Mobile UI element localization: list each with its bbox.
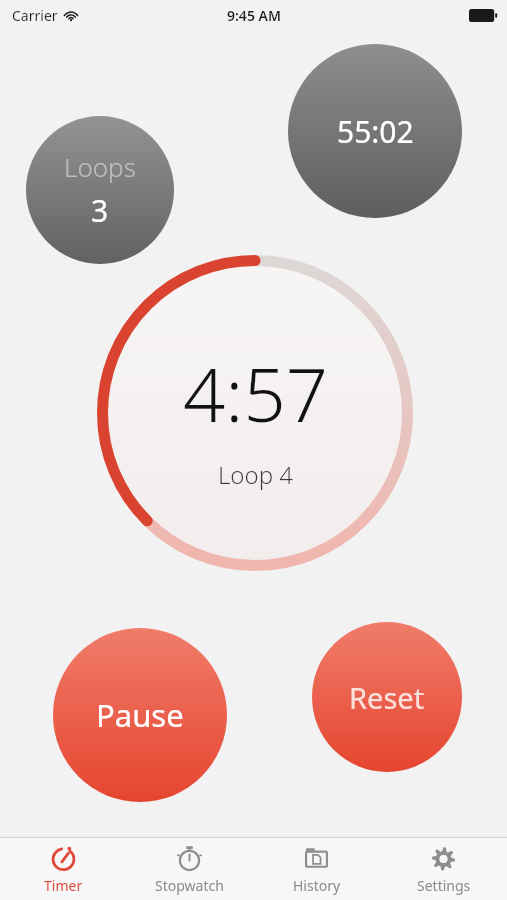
button[interactable]: Reset <box>312 622 462 772</box>
staticText: Reset <box>349 678 425 717</box>
button[interactable]: 4:57 <box>92 250 418 576</box>
other: Settings <box>429 843 458 872</box>
staticText: Carrier <box>12 6 58 25</box>
other: History <box>302 843 331 872</box>
staticText: 9:45 AM <box>227 6 281 25</box>
button[interactable]: Stopwatch <box>126 838 253 900</box>
staticText: 4:57 <box>183 343 328 444</box>
button[interactable]: 55:02 <box>288 44 462 218</box>
staticText: 55:02 <box>337 111 414 152</box>
staticText: Pause <box>96 694 184 736</box>
staticText: Settings <box>417 876 471 895</box>
other: Stopwatch <box>175 843 204 872</box>
button[interactable]: Pause <box>53 628 227 802</box>
staticText: 3 <box>91 190 109 231</box>
other: Timer <box>49 843 78 872</box>
button[interactable]: Loops <box>26 116 174 264</box>
button[interactable]: Settings <box>380 838 507 900</box>
button[interactable]: History <box>253 838 380 900</box>
staticText: Timer <box>44 876 83 895</box>
staticText: History <box>293 876 341 895</box>
staticText: Loops <box>64 149 136 184</box>
button[interactable]: Timer <box>0 838 126 900</box>
staticText: Loop 4 <box>218 458 293 491</box>
staticText: Stopwatch <box>155 876 224 895</box>
